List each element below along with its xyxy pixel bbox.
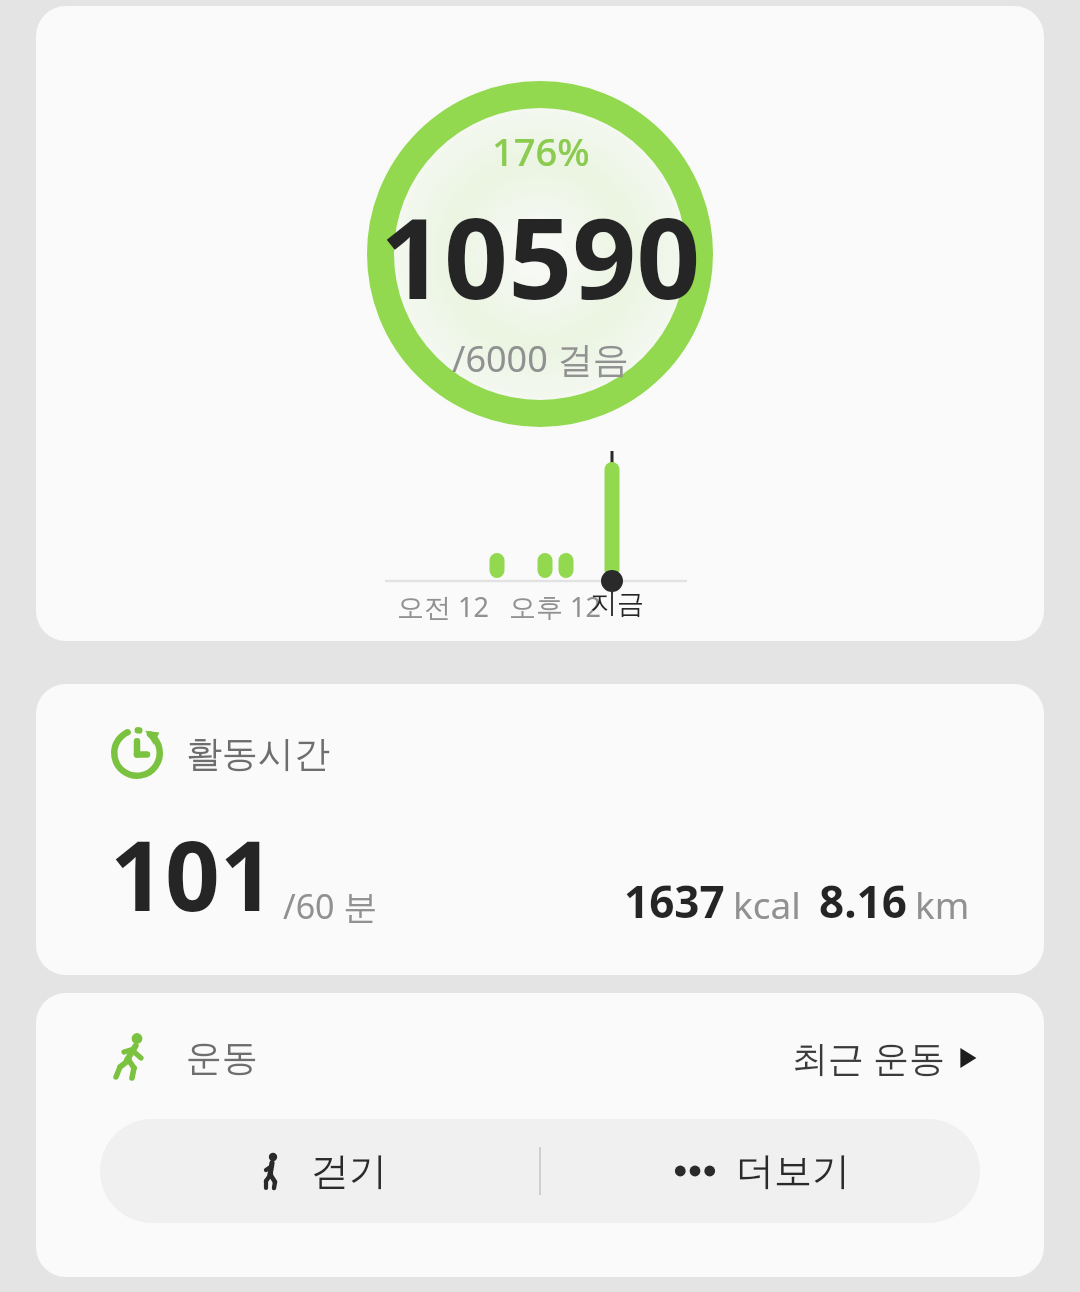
staticText: 더보기 xyxy=(736,1147,850,1195)
staticText: 최근 운동 xyxy=(792,1033,946,1082)
staticText: 176% xyxy=(492,125,590,177)
staticText: /60 분 xyxy=(283,883,378,929)
staticText: 오후 12 xyxy=(509,588,601,625)
button[interactable]: 176% xyxy=(36,6,1044,641)
staticText: /6000 걸음 xyxy=(452,334,630,383)
staticText: kcal xyxy=(733,879,801,929)
button[interactable]: 더보기 xyxy=(541,1119,980,1223)
staticText: 걷기 xyxy=(311,1147,387,1195)
staticText: 8.16 xyxy=(819,871,907,931)
staticText: 오전 12 xyxy=(397,588,489,625)
button[interactable]: 최근 운동 xyxy=(792,1033,978,1082)
staticText: 1637 xyxy=(624,871,725,931)
staticText: km xyxy=(915,879,970,929)
other: 운동 xyxy=(110,1031,162,1083)
staticText: 운동 xyxy=(186,1035,258,1080)
staticText: 101 xyxy=(110,808,275,939)
button[interactable]: 걷기 xyxy=(100,1119,539,1223)
staticText: 지금 xyxy=(590,587,644,621)
staticText: 10590 xyxy=(380,179,701,332)
button[interactable]: 활동시간 xyxy=(36,684,1044,975)
staticText: 활동시간 xyxy=(186,731,330,776)
